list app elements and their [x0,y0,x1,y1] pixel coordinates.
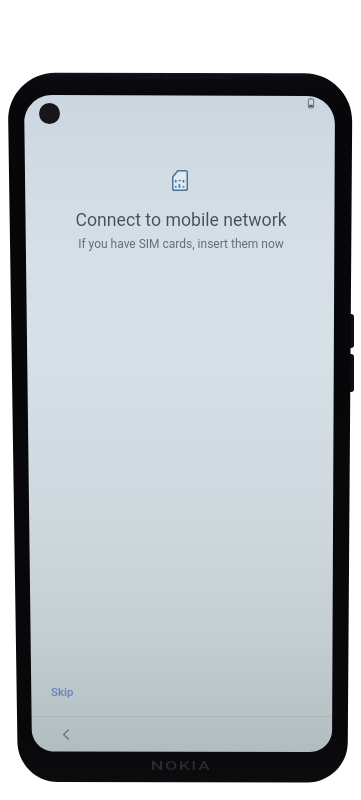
button[interactable]: Back [51,719,81,749]
staticText: Connect to mobile network [75,210,287,231]
button[interactable]: Skip [41,677,84,706]
staticText: Skip [51,685,74,698]
staticText: NOKIA [151,758,212,773]
staticText: If you have SIM cards, insert them now [78,237,284,251]
